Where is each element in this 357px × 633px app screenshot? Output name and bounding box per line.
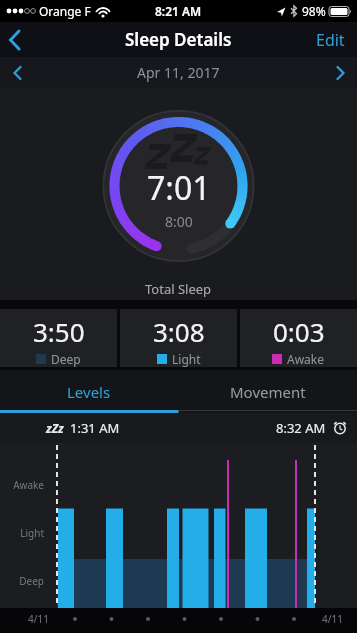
button[interactable]: Levels <box>0 370 178 413</box>
button[interactable] <box>0 22 30 57</box>
staticText: 0:03 <box>273 314 325 349</box>
button[interactable] <box>323 57 357 88</box>
staticText: Edit <box>316 29 345 51</box>
staticText: 4/11 <box>322 612 343 626</box>
staticText: 7:01 <box>147 166 211 210</box>
button[interactable]: 3:50 <box>0 309 117 367</box>
staticText: zZz <box>46 420 64 436</box>
button[interactable]: 0:03 <box>240 309 357 367</box>
staticText: Total Sleep <box>145 280 212 298</box>
button[interactable]: Edit <box>304 23 357 57</box>
button[interactable] <box>0 57 34 88</box>
staticText: Movement <box>230 382 306 402</box>
staticText: Awake <box>6 478 44 492</box>
staticText: 8:21 AM <box>155 3 202 19</box>
staticText: Awake <box>287 351 325 367</box>
staticText: Sleep Details <box>125 28 232 51</box>
staticText: Apr 11, 2017 <box>137 63 220 82</box>
staticText: 3:50 <box>33 314 85 349</box>
staticText: Deep <box>51 351 81 367</box>
staticText: Orange F <box>39 3 91 19</box>
staticText: Light <box>172 351 201 367</box>
staticText: 98% <box>302 3 326 19</box>
staticText: 8:32 AM <box>276 419 326 437</box>
button[interactable]: 3:08 <box>120 309 237 367</box>
staticText: 1:31 AM <box>70 419 120 437</box>
staticText: Levels <box>67 382 111 402</box>
staticText: Light <box>6 526 44 540</box>
staticText: 8:00 <box>165 212 193 231</box>
staticText: 3:08 <box>153 314 205 349</box>
staticText: 4/11 <box>28 612 49 626</box>
staticText: Deep <box>6 574 44 588</box>
button[interactable]: Movement <box>178 370 357 413</box>
